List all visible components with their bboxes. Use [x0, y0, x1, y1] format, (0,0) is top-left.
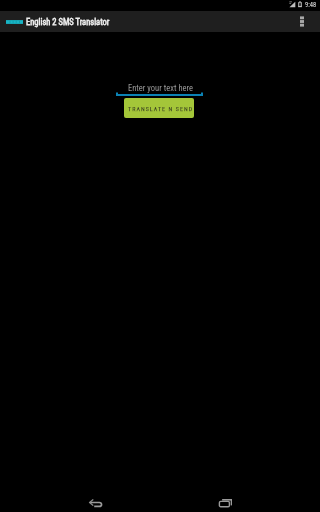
staticText: English 2 SMS Translator — [26, 17, 110, 27]
staticText: TRANSLATE N SEND — [128, 105, 194, 112]
button[interactable]: Enter your text here — [116, 82, 203, 96]
button[interactable]: More options — [291, 11, 313, 32]
button[interactable]: TRANSLATE N SEND — [124, 98, 194, 118]
staticText: Enter your text here — [117, 83, 204, 93]
button[interactable]: Recent apps — [209, 492, 241, 512]
staticText: 9:48 — [305, 1, 317, 9]
button[interactable]: Back — [79, 492, 111, 512]
